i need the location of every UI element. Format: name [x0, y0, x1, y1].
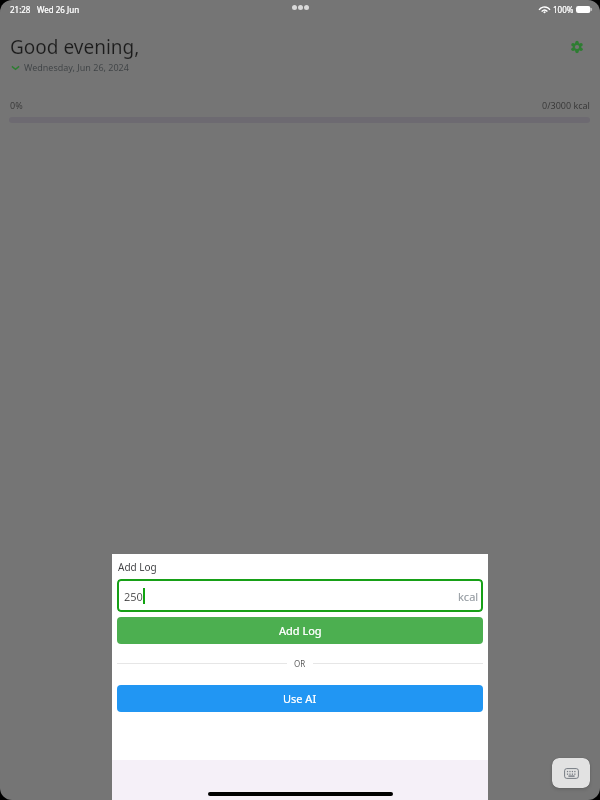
staticText: Add Log — [118, 560, 157, 574]
staticText: 0% — [10, 99, 23, 111]
button[interactable]: Settings — [564, 34, 590, 60]
staticText: Use AI — [283, 691, 317, 706]
staticText: kcal — [458, 589, 479, 604]
staticText: Add Log — [279, 623, 322, 638]
staticText: OR — [294, 658, 306, 669]
button[interactable]: Add Log — [117, 617, 483, 644]
staticText: Good evening, — [10, 34, 140, 60]
button[interactable]: 250 — [117, 579, 483, 612]
staticText: 21:28 — [10, 4, 31, 15]
button[interactable]: Hide keyboard — [552, 758, 590, 788]
staticText: 100% — [553, 4, 574, 15]
staticText: 0/3000 kcal — [542, 99, 590, 111]
staticText: Wednesday, Jun 26, 2024 — [24, 61, 129, 73]
button[interactable]: Wednesday, Jun 26, 2024 — [10, 61, 129, 73]
staticText: Wed 26 Jun — [37, 4, 80, 15]
staticText: 250 — [124, 589, 143, 604]
button[interactable]: Use AI — [117, 685, 483, 712]
